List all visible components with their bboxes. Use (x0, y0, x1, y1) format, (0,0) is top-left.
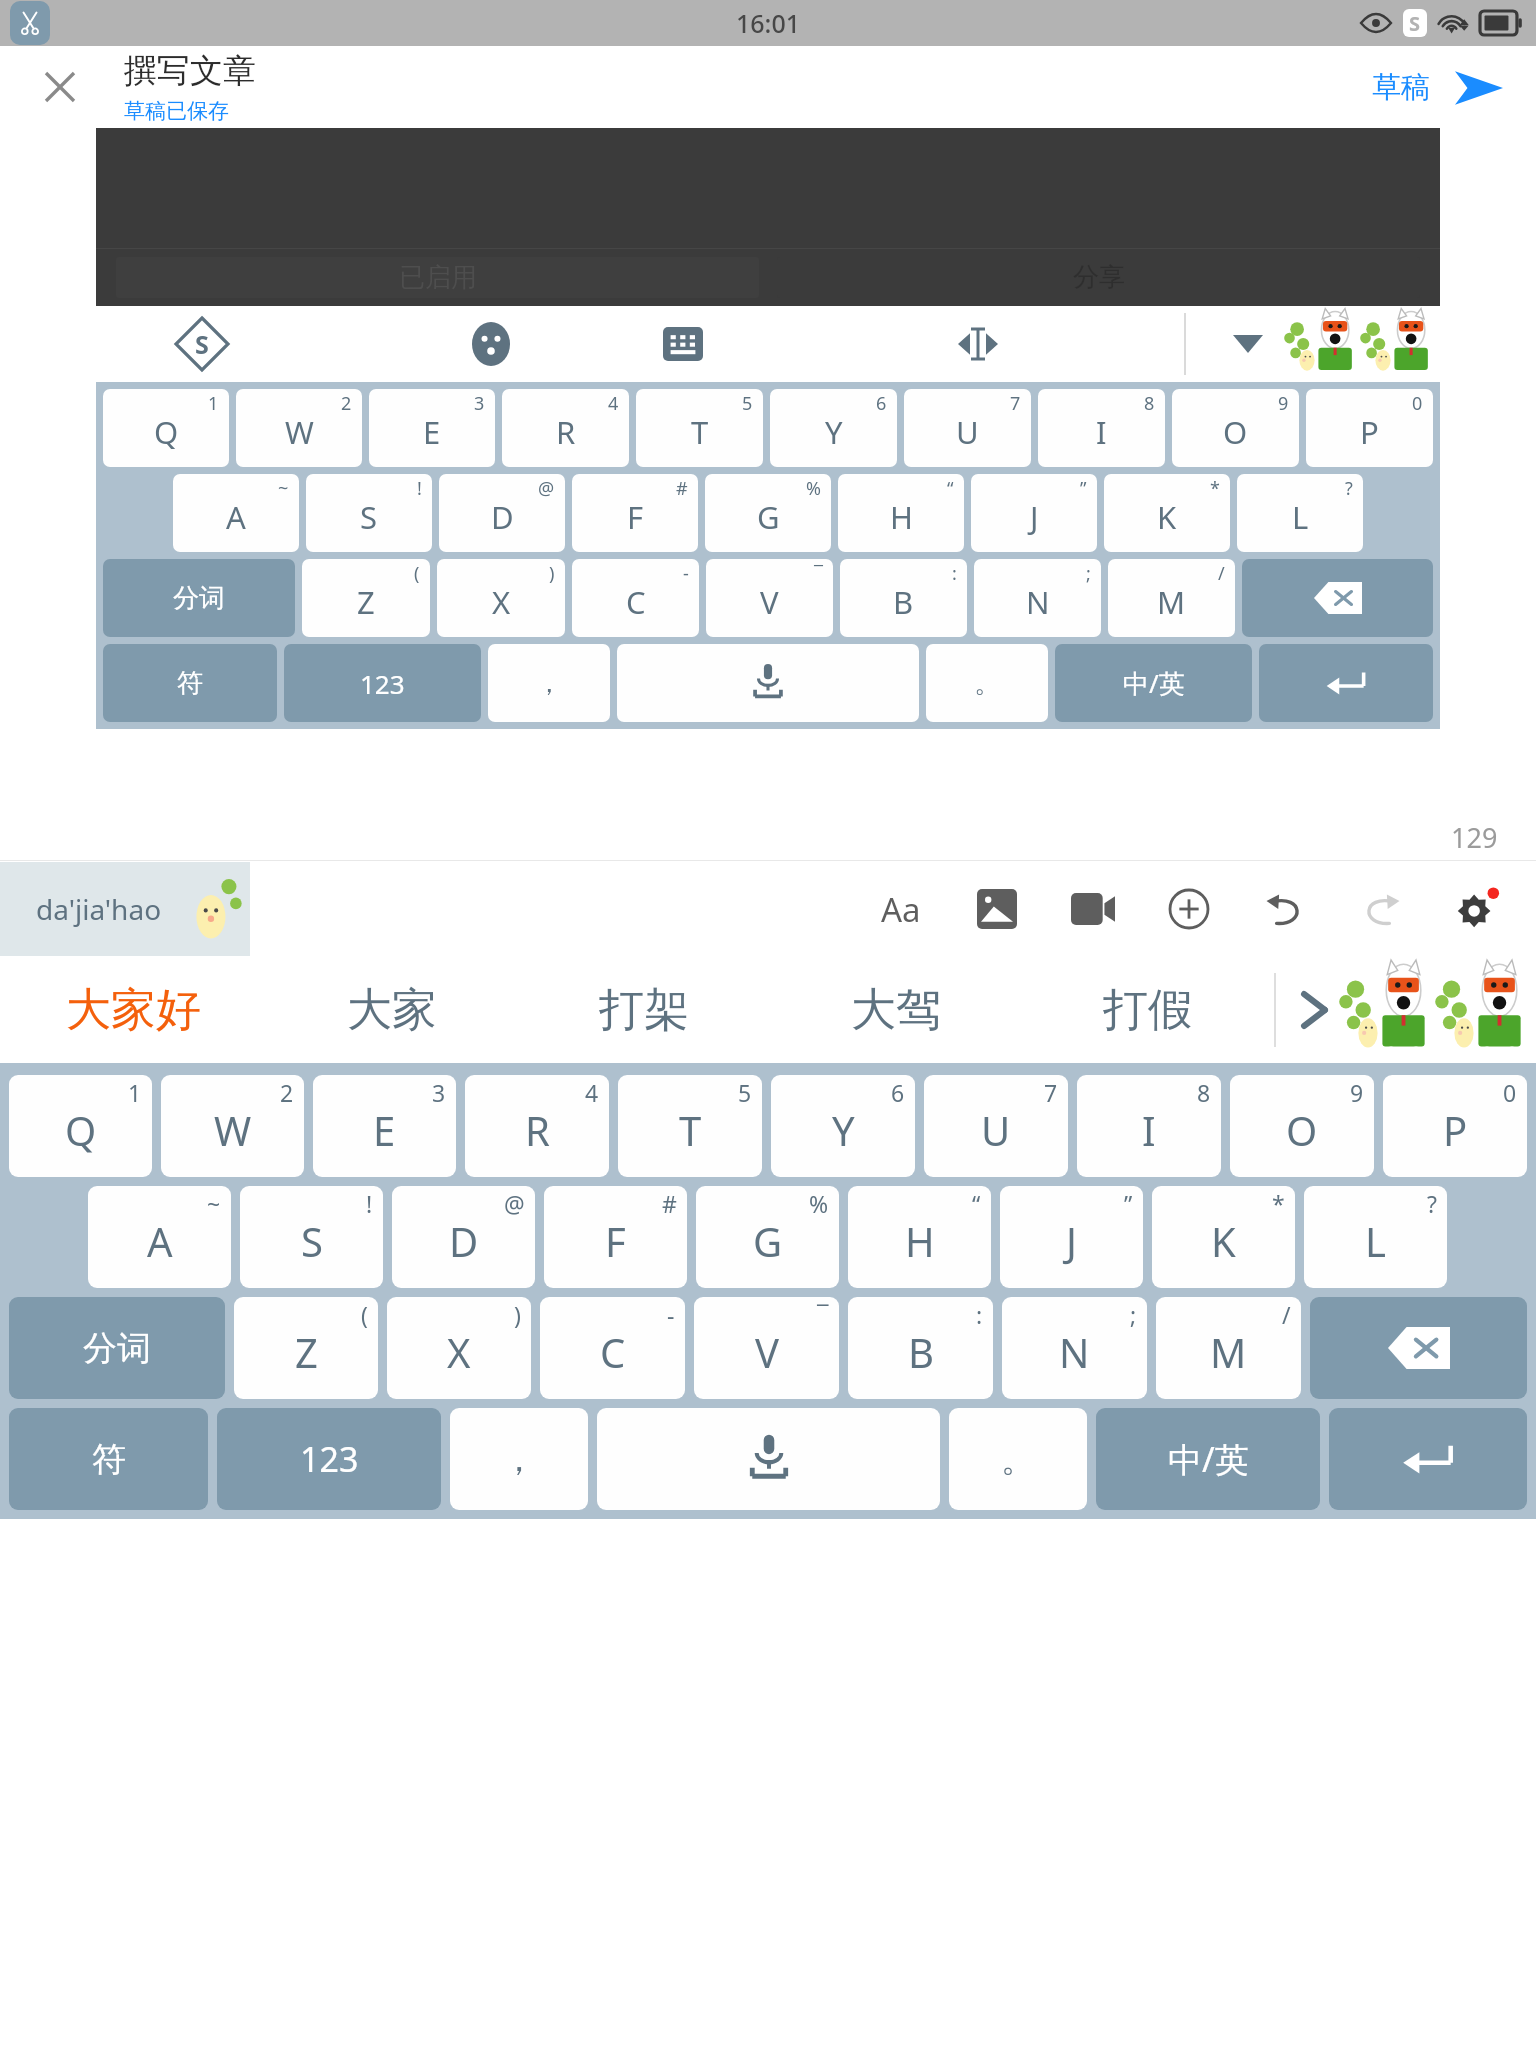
button[interactable]: Settings (1448, 880, 1506, 938)
staticText: ! (417, 476, 422, 501)
button[interactable]: E (313, 1075, 456, 1177)
button[interactable]: C (572, 559, 699, 637)
button[interactable]: Enter (1259, 644, 1433, 722)
button[interactable]: Q (103, 389, 229, 467)
button[interactable]: Add (1160, 880, 1218, 938)
button[interactable]: 分词 (103, 559, 295, 637)
button[interactable]: H (848, 1186, 991, 1288)
button[interactable]: ， (450, 1408, 588, 1510)
button[interactable]: 大驾 (770, 957, 1022, 1063)
button[interactable]: Enter (1329, 1408, 1527, 1510)
staticText: G (757, 496, 780, 538)
staticText: T (691, 411, 709, 453)
button[interactable]: Emoji (466, 319, 516, 369)
button[interactable]: O (1230, 1075, 1374, 1177)
button[interactable]: More candidates (1276, 957, 1536, 1063)
button[interactable]: A (173, 474, 299, 552)
button[interactable]: I (1077, 1075, 1221, 1177)
button[interactable]: L (1237, 474, 1363, 552)
button[interactable]: Move cursor (952, 318, 1004, 370)
button[interactable]: F (544, 1186, 687, 1288)
button[interactable]: Y (770, 389, 897, 467)
button[interactable]: E (369, 389, 495, 467)
button[interactable]: W (161, 1075, 304, 1177)
staticText: ) (549, 561, 555, 586)
button[interactable]: 分词 (9, 1297, 225, 1399)
button[interactable]: G (696, 1186, 839, 1288)
button[interactable]: 大家 (266, 957, 518, 1063)
button[interactable]: D (392, 1186, 535, 1288)
button[interactable]: Insert video (1064, 880, 1122, 938)
button[interactable]: 123 (284, 644, 481, 722)
button[interactable]: X (387, 1297, 531, 1399)
button[interactable]: 。 (926, 644, 1048, 722)
button[interactable]: Space / Voice input (617, 644, 919, 722)
button[interactable]: 大家好 (0, 957, 266, 1063)
button[interactable]: 中/英 (1096, 1408, 1320, 1510)
button[interactable]: T (618, 1075, 762, 1177)
button[interactable]: P (1383, 1075, 1527, 1177)
button[interactable]: W (236, 389, 362, 467)
button[interactable]: Redo (1352, 880, 1410, 938)
button[interactable]: K (1104, 474, 1230, 552)
button[interactable]: H (838, 474, 964, 552)
button[interactable]: M (1156, 1297, 1301, 1399)
button[interactable]: B (848, 1297, 993, 1399)
button[interactable]: J (971, 474, 1097, 552)
button[interactable]: V (694, 1297, 839, 1399)
button[interactable]: Q (9, 1075, 152, 1177)
button[interactable]: M (1108, 559, 1235, 637)
button[interactable]: 打假 (1022, 957, 1274, 1063)
button[interactable]: ， (488, 644, 610, 722)
button[interactable]: X (437, 559, 565, 637)
button[interactable]: Z (234, 1297, 378, 1399)
button[interactable]: F (572, 474, 698, 552)
button[interactable]: G (705, 474, 831, 552)
button[interactable]: Collapse (1224, 320, 1272, 368)
staticText: 0 (1503, 1077, 1517, 1108)
button[interactable]: Y (771, 1075, 915, 1177)
button[interactable]: Sogou (174, 316, 230, 372)
button[interactable]: C (540, 1297, 685, 1399)
button[interactable]: P (1306, 389, 1433, 467)
button[interactable]: S (306, 474, 432, 552)
button[interactable]: D (439, 474, 565, 552)
button[interactable]: 。 (949, 1408, 1087, 1510)
button[interactable]: 打架 (518, 957, 770, 1063)
button[interactable]: R (502, 389, 629, 467)
button[interactable]: Text style (872, 880, 930, 938)
button[interactable]: 草稿 (1366, 59, 1436, 116)
button[interactable]: da'jia'hao (0, 862, 250, 956)
button[interactable]: V (706, 559, 833, 637)
button[interactable]: O (1172, 389, 1299, 467)
button[interactable]: Insert image (968, 880, 1026, 938)
button[interactable]: J (1000, 1186, 1143, 1288)
button[interactable]: N (1002, 1297, 1147, 1399)
button[interactable]: Backspace (1310, 1297, 1527, 1399)
button[interactable]: I (1038, 389, 1165, 467)
button[interactable]: Keyboard layout (656, 317, 710, 371)
button[interactable]: Send (1452, 61, 1506, 115)
button[interactable]: 符 (103, 644, 277, 722)
button[interactable]: T (636, 389, 763, 467)
button[interactable]: 123 (217, 1408, 441, 1510)
button[interactable]: K (1152, 1186, 1295, 1288)
staticText: V (755, 1325, 779, 1379)
button[interactable]: Undo (1256, 880, 1314, 938)
button[interactable]: Space / Voice input (597, 1408, 940, 1510)
button[interactable]: N (974, 559, 1101, 637)
button[interactable]: 符 (9, 1408, 208, 1510)
button[interactable]: Backspace (1242, 559, 1433, 637)
button[interactable]: U (924, 1075, 1068, 1177)
button[interactable]: 中/英 (1055, 644, 1252, 722)
button[interactable]: S (240, 1186, 383, 1288)
button[interactable]: Z (302, 559, 430, 637)
button[interactable]: U (904, 389, 1031, 467)
button[interactable]: B (840, 559, 967, 637)
button[interactable]: L (1304, 1186, 1447, 1288)
button[interactable]: Close (34, 61, 86, 113)
button[interactable]: R (465, 1075, 609, 1177)
button[interactable]: A (88, 1186, 231, 1288)
